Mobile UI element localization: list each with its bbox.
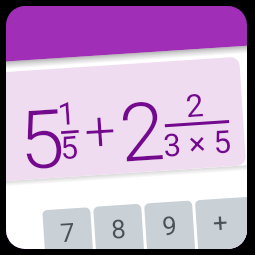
button[interactable]: Fraction Calculator [0,0,255,255]
